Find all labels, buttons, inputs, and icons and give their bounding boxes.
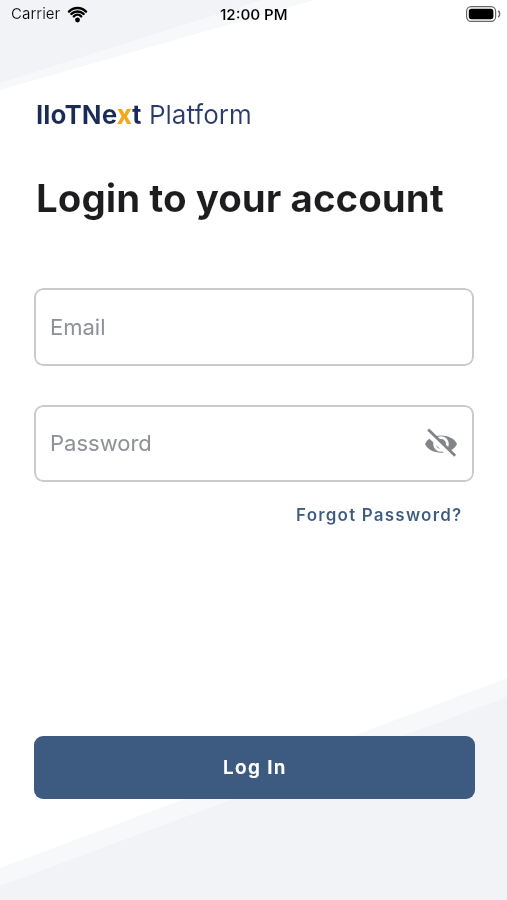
staticText: Carrier: [11, 4, 61, 22]
button[interactable]: Password: [34, 405, 474, 482]
button[interactable]: Email: [34, 288, 474, 366]
staticText: Login to your account: [36, 175, 444, 222]
staticText: Password: [50, 430, 152, 457]
staticText: 12:00 PM: [220, 5, 288, 23]
button[interactable]: Forgot Password?: [296, 505, 463, 526]
staticText: Log In: [223, 756, 287, 779]
staticText: Email: [50, 314, 106, 341]
button[interactable]: Log In: [34, 736, 475, 799]
staticText: IIoTNext Platform: [36, 99, 252, 130]
